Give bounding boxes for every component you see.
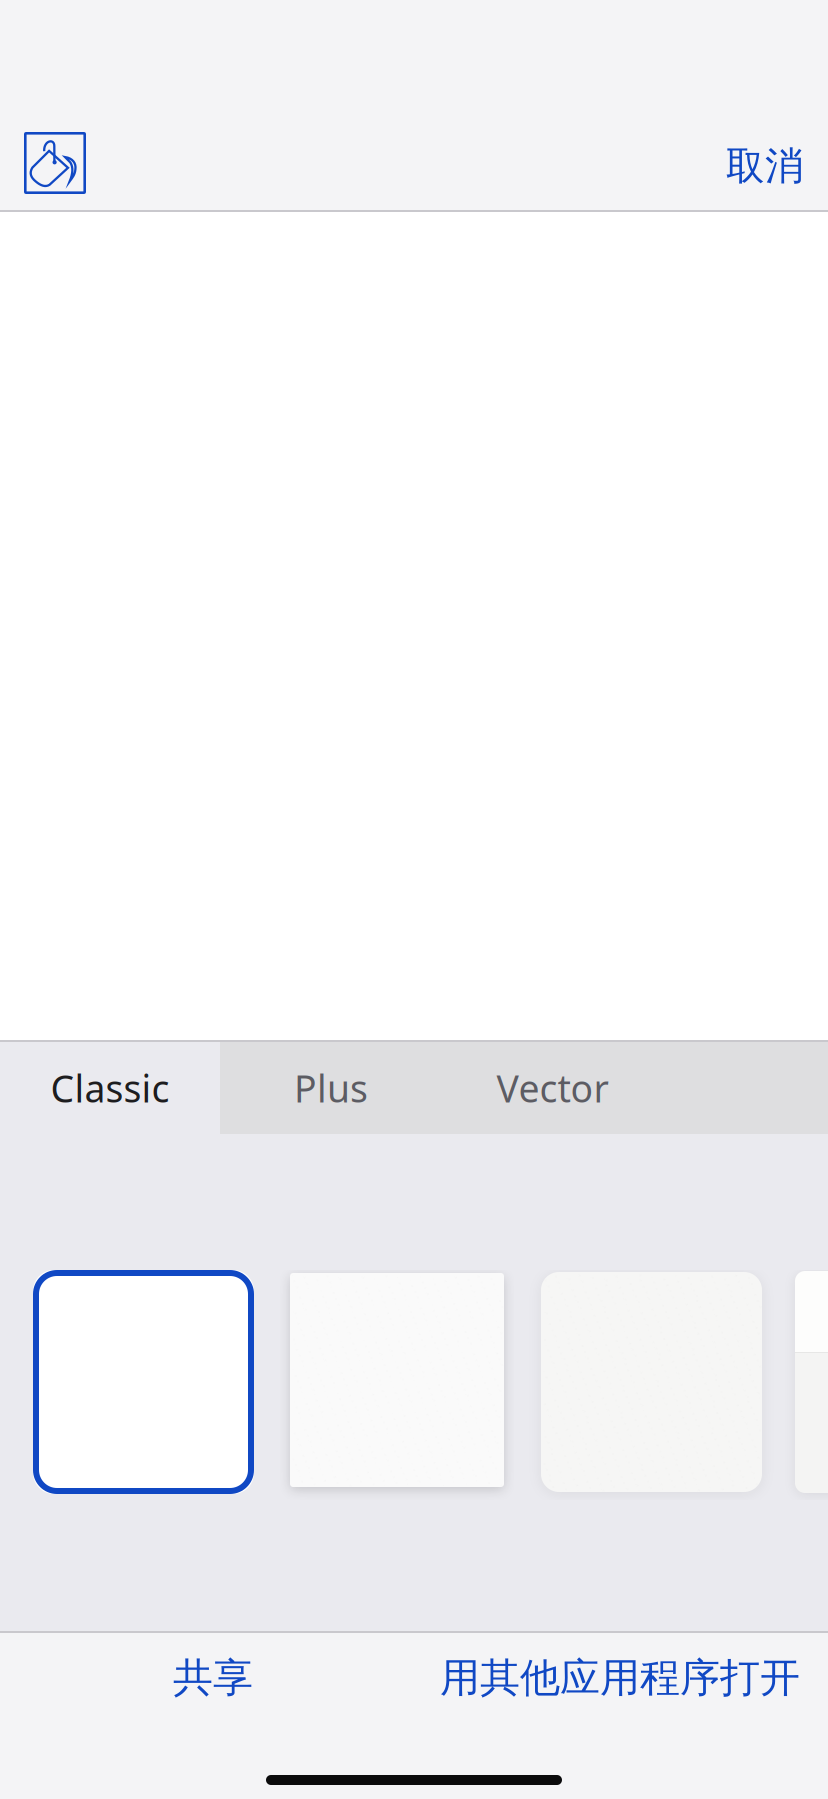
button[interactable]: Plus [220,1042,442,1134]
button[interactable]: Paper texture [0,120,110,210]
staticText: 用其他应用程序打开 [440,1653,800,1702]
button[interactable]: Classic [0,1042,220,1134]
button[interactable]: Vector [442,1042,663,1134]
button[interactable]: Plain paper, selected [0,1270,290,1494]
button[interactable]: 取消 [693,121,828,211]
button[interactable]: Woven paper [541,1270,795,1492]
staticText: Classic [50,1063,169,1113]
button[interactable]: 用其他应用程序打开 [420,1630,820,1726]
button[interactable]: Textured paper [290,1270,541,1487]
staticText: 取消 [726,142,804,190]
staticText: Plus [294,1063,368,1113]
staticText: Vector [496,1063,608,1113]
button[interactable]: 共享 [133,1630,293,1726]
staticText: 共享 [173,1653,253,1702]
button[interactable]: Folded card [795,1270,828,1493]
